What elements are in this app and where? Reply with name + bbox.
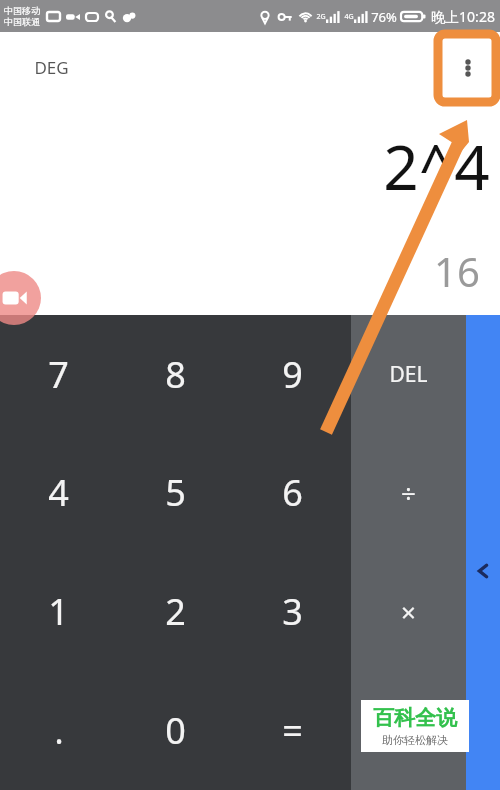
button[interactable]: 6	[234, 433, 351, 552]
staticText: 8	[165, 350, 186, 399]
staticText: .	[54, 708, 64, 754]
staticText: 9	[282, 350, 303, 399]
button[interactable]: 4	[0, 433, 117, 552]
staticText: ÷	[401, 475, 416, 510]
staticText: 中国联通	[4, 16, 40, 27]
button[interactable]: 7	[0, 315, 117, 433]
button[interactable]: 2	[117, 552, 234, 671]
staticText: 3	[282, 587, 303, 636]
button[interactable]: 8	[117, 315, 234, 433]
button[interactable]: .	[0, 671, 117, 790]
staticText: 助你轻松解决	[382, 733, 448, 747]
staticText: 1	[48, 587, 69, 636]
button[interactable]: ×	[351, 552, 466, 671]
button[interactable]: Screen recorder	[0, 271, 41, 325]
button[interactable]: =	[234, 671, 351, 790]
button[interactable]: ÷	[351, 433, 466, 552]
button[interactable]: 3	[234, 552, 351, 671]
staticText: DEL	[389, 360, 428, 389]
staticText: 6	[282, 468, 303, 517]
staticText: ×	[401, 594, 416, 629]
staticText: −	[401, 713, 416, 748]
staticText: 4G	[344, 12, 354, 22]
staticText: 16	[434, 244, 480, 298]
staticText: 百科全说	[373, 705, 457, 731]
button[interactable]: Expand side panel	[466, 315, 500, 790]
staticText: 2G	[316, 12, 326, 22]
staticText: =	[282, 706, 303, 755]
staticText: 5	[165, 468, 186, 517]
button[interactable]: More options	[442, 42, 494, 94]
staticText: 晚上10:28	[431, 7, 495, 26]
staticText: 2^4	[383, 124, 490, 208]
staticText: 0	[165, 706, 186, 755]
button[interactable]: −	[351, 671, 466, 790]
button[interactable]: DEL	[351, 315, 466, 433]
button[interactable]: DEG	[34, 56, 69, 79]
staticText: 中国移动	[4, 5, 40, 16]
button[interactable]: 0	[117, 671, 234, 790]
button[interactable]: 5	[117, 433, 234, 552]
button[interactable]: 1	[0, 552, 117, 671]
staticText: DEG	[34, 56, 69, 79]
staticText: 4	[48, 468, 69, 517]
staticText: 76%	[371, 8, 397, 26]
button[interactable]: 9	[234, 315, 351, 433]
staticText: 7	[48, 350, 69, 399]
staticText: 2	[165, 587, 186, 636]
